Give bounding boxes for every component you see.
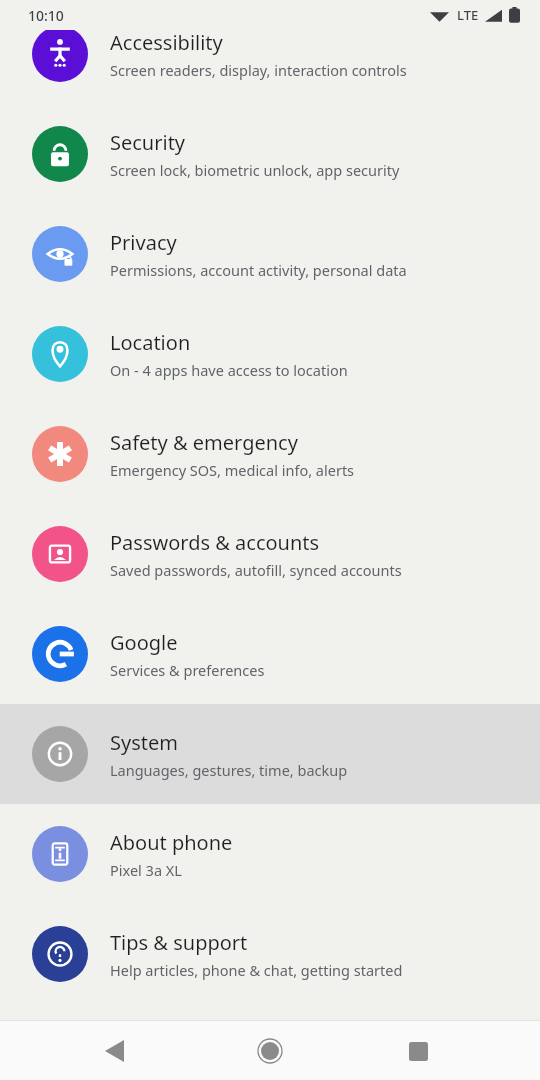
staticText: Screen readers, display, interaction con…	[110, 60, 407, 80]
staticText: On - 4 apps have access to location	[110, 360, 348, 380]
button[interactable]: Google	[0, 604, 540, 704]
staticText: Languages, gestures, time, backup	[110, 760, 348, 780]
staticText: Passwords & accounts	[110, 529, 320, 556]
staticText: Privacy	[110, 229, 177, 256]
staticText: Security	[110, 129, 186, 156]
button[interactable]: Tips & support	[0, 904, 540, 1004]
button[interactable]: Safety & emergency	[0, 404, 540, 504]
staticText: Google	[110, 629, 178, 656]
staticText: LTE	[457, 6, 479, 24]
staticText: Safety & emergency	[110, 429, 298, 456]
staticText: Accessibility	[110, 29, 223, 56]
button[interactable]: Recent apps	[394, 1027, 442, 1075]
staticText: Screen lock, biometric unlock, app secur…	[110, 160, 400, 180]
button[interactable]: Passwords & accounts	[0, 504, 540, 604]
button[interactable]: Home	[246, 1027, 294, 1075]
button[interactable]: About phone	[0, 804, 540, 904]
staticText: System	[110, 729, 178, 756]
staticText: Permissions, account activity, personal …	[110, 260, 407, 280]
button[interactable]: Security	[0, 104, 540, 204]
staticText: Tips & support	[110, 929, 248, 956]
staticText: Help articles, phone & chat, getting sta…	[110, 960, 403, 980]
button[interactable]: Back	[90, 1027, 138, 1075]
staticText: Saved passwords, autofill, synced accoun…	[110, 560, 402, 580]
staticText: Services & preferences	[110, 660, 265, 680]
button[interactable]: Accessibility	[0, 4, 540, 104]
staticText: Emergency SOS, medical info, alerts	[110, 460, 355, 480]
button[interactable]: Privacy	[0, 204, 540, 304]
button[interactable]: Location	[0, 304, 540, 404]
button[interactable]: System	[0, 704, 540, 804]
staticText: 10:10	[28, 6, 64, 25]
staticText: Pixel 3a XL	[110, 860, 182, 880]
staticText: About phone	[110, 829, 233, 856]
staticText: Location	[110, 329, 191, 356]
